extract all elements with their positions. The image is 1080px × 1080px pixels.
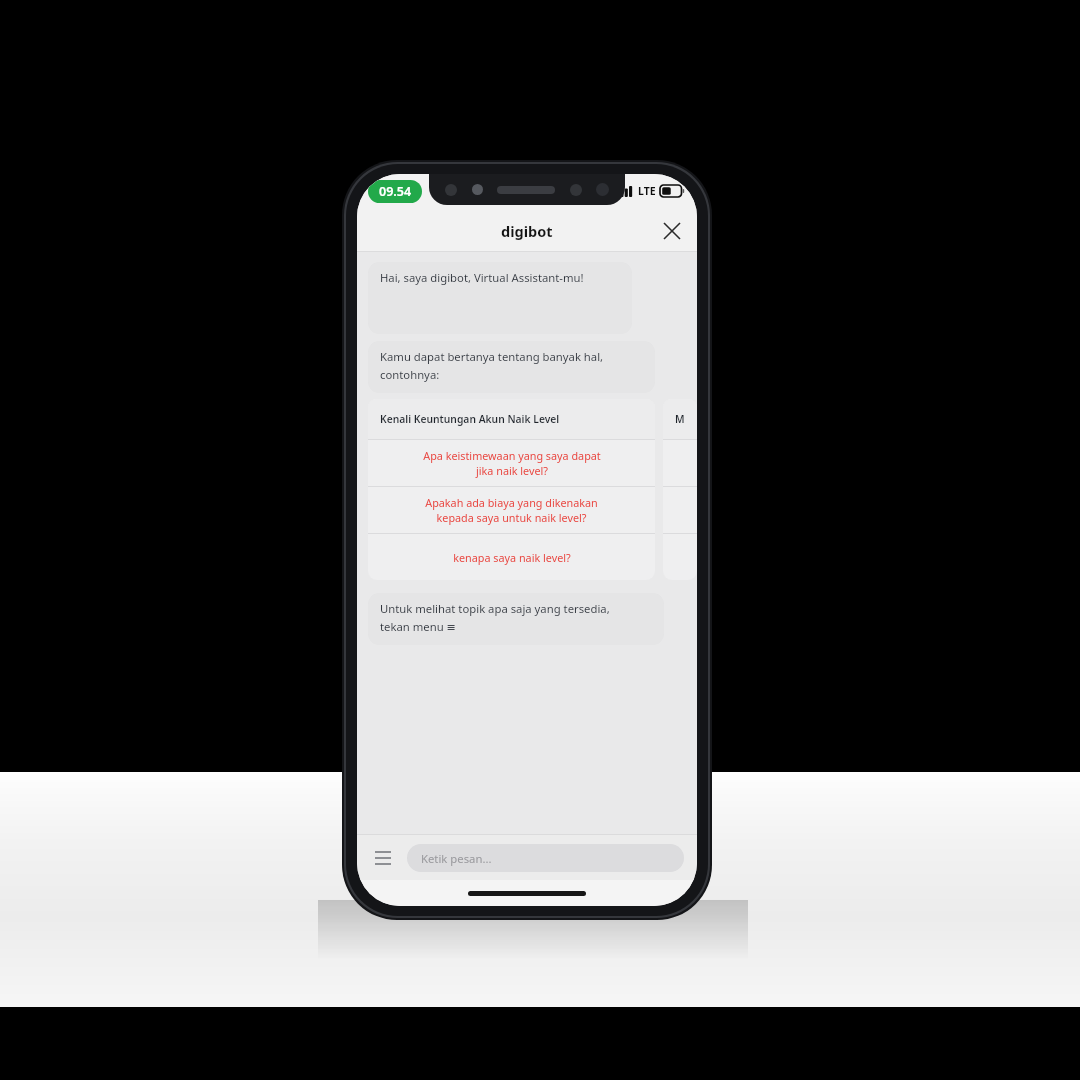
button[interactable]: kenapa saya naik level? <box>368 534 655 580</box>
staticText: Untuk melihat topik apa saja yang tersed… <box>380 601 610 635</box>
staticText: kenapa saya naik level? <box>453 550 571 565</box>
button[interactable]: Untuk melihat topik apa saja yang tersed… <box>368 593 664 645</box>
staticText: Kamu dapat bertanya tentang banyak hal, … <box>380 349 604 382</box>
staticText: LTE <box>638 184 656 198</box>
button[interactable]: Apa keistimewaan yang saya dapat jika na… <box>368 440 655 486</box>
staticText: Ketik pesan... <box>421 851 492 866</box>
staticText: Hai, saya digibot, Virtual Assistant-mu! <box>380 270 584 285</box>
button[interactable]: Ketik pesan... <box>407 844 684 872</box>
button[interactable]: Apakah ada biaya yang dikenakan kepada s… <box>368 487 655 533</box>
button[interactable]: Close <box>656 215 688 247</box>
staticText: Apakah ada biaya yang dikenakan kepada s… <box>425 495 598 525</box>
staticText: Apa keistimewaan yang saya dapat jika na… <box>423 448 601 478</box>
button[interactable]: Menu <box>370 845 396 871</box>
staticText: digibot <box>501 221 553 241</box>
button[interactable]: Hai, saya digibot, Virtual Assistant-mu! <box>368 262 632 334</box>
staticText: Kenali Keuntungan Akun Naik Level <box>380 412 560 426</box>
staticText: 09.54 <box>379 183 412 200</box>
staticText: M <box>675 412 685 426</box>
button[interactable]: Kamu dapat bertanya tentang banyak hal, … <box>368 341 655 393</box>
